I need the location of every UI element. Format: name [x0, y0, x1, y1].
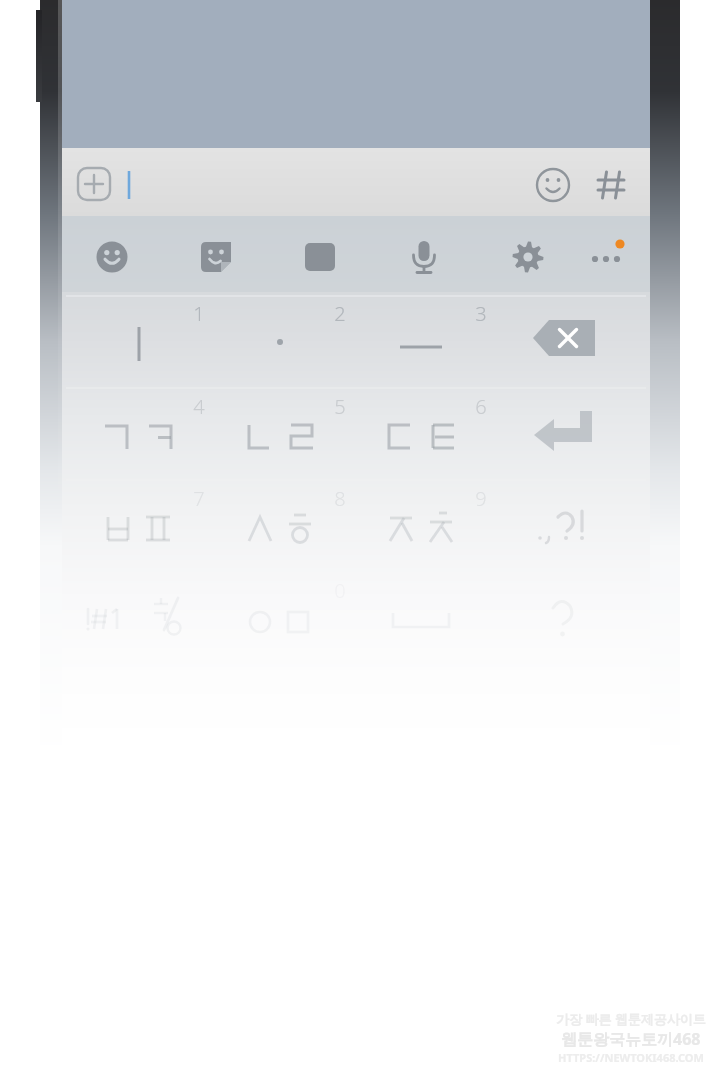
button[interactable]: [120, 156, 530, 210]
button[interactable]: Emoticons: [86, 231, 138, 283]
staticText: 3: [475, 300, 487, 327]
button[interactable]: .,?!: [494, 484, 630, 574]
staticText: 4: [193, 393, 205, 420]
button[interactable]: Voice input: [398, 231, 450, 283]
staticText: 9: [475, 485, 487, 512]
button[interactable]: ㄱㅋ: [72, 392, 208, 482]
staticText: HTTPS://NEWTOKI468.COM: [558, 1050, 704, 1065]
button[interactable]: Stickers: [190, 231, 242, 283]
button[interactable]: ㅈㅊ: [353, 484, 489, 574]
button[interactable]: ㅣ: [72, 300, 208, 390]
button[interactable]: ㄷㅌ: [353, 392, 489, 482]
staticText: 웹툰왕국뉴토끼468: [561, 1028, 701, 1050]
button[interactable]: More options: [580, 231, 632, 283]
button[interactable]: Hashtag: [587, 161, 635, 209]
button[interactable]: ㅅㅎ: [212, 484, 348, 574]
staticText: 2: [334, 300, 346, 327]
staticText: 8: [334, 485, 346, 512]
staticText: 6: [475, 393, 487, 420]
staticText: 7: [193, 485, 205, 512]
button[interactable]: ㆍ: [212, 300, 348, 390]
button[interactable]: Enter: [494, 392, 630, 482]
button[interactable]: Backspace: [494, 300, 630, 390]
button[interactable]: ㅂㅍ: [72, 484, 208, 574]
button[interactable]: ㄴㄹ: [212, 392, 348, 482]
staticText: 1: [193, 300, 205, 327]
staticText: 가장 빠른 웹툰제공사이트: [556, 1010, 706, 1028]
staticText: 5: [334, 393, 346, 420]
button[interactable]: Emoji: [529, 161, 577, 209]
button[interactable]: ㅡ: [353, 300, 489, 390]
button[interactable]: Keyboard settings: [502, 231, 554, 283]
button[interactable]: Add attachment: [70, 160, 118, 208]
button[interactable]: GIF: [294, 231, 346, 283]
